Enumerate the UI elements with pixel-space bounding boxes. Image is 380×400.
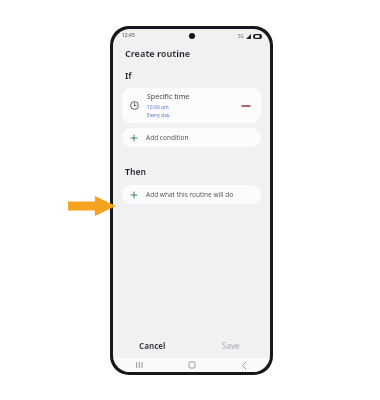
staticText: Every day xyxy=(147,112,170,119)
button[interactable]: Add what this routine will do xyxy=(122,185,261,204)
staticText: 12:45 xyxy=(122,32,135,39)
staticText: Specific time xyxy=(147,92,190,102)
button[interactable]: Add condition xyxy=(122,128,261,147)
staticText: Then xyxy=(125,166,147,178)
button[interactable]: Recent apps xyxy=(113,358,166,372)
staticText: Cancel xyxy=(139,340,166,351)
staticText: 5G xyxy=(238,33,244,39)
button[interactable]: Cancel xyxy=(113,332,191,358)
button[interactable]: Back xyxy=(218,358,270,372)
staticText: Add condition xyxy=(146,133,189,142)
staticText: Create routine xyxy=(125,47,191,59)
button[interactable]: Remove condition xyxy=(239,99,253,113)
staticText: 10:00 am xyxy=(147,104,169,111)
button[interactable]: Home xyxy=(166,358,218,372)
staticText: Save xyxy=(222,340,240,351)
staticText: Add what this routine will do xyxy=(146,190,234,199)
button[interactable]: Save xyxy=(191,332,270,358)
button[interactable]: Specific time xyxy=(122,88,261,123)
staticText: If xyxy=(125,70,132,82)
